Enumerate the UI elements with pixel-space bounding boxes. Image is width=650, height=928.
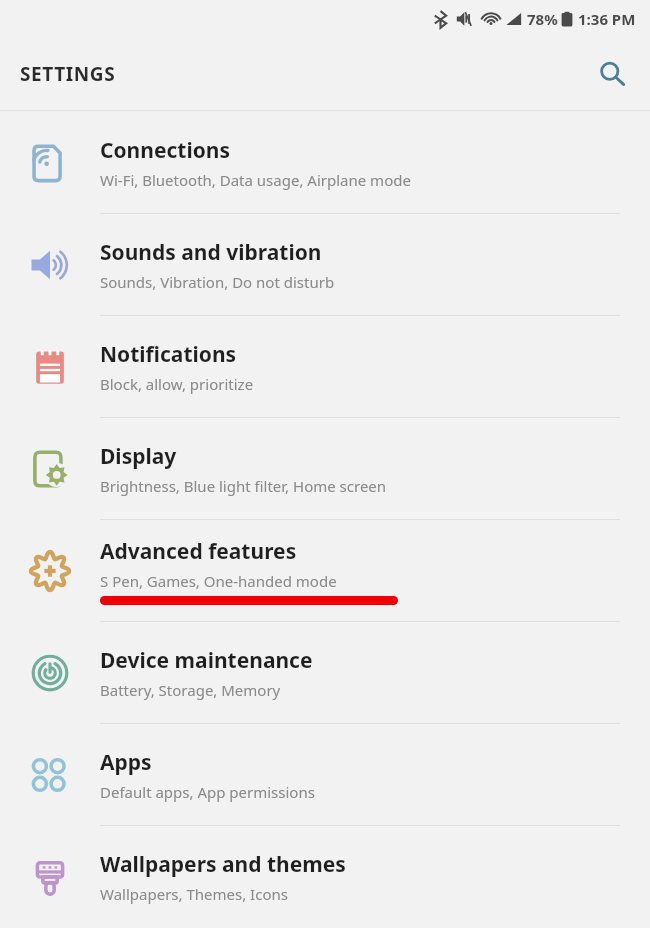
button[interactable]: Device maintenance (0, 622, 650, 723)
staticText: Display (100, 442, 177, 471)
staticText: Wallpapers, Themes, Icons (100, 884, 288, 904)
button[interactable]: Display (0, 418, 650, 519)
staticText: SETTINGS (20, 61, 116, 87)
staticText: Advanced features (100, 537, 297, 566)
staticText: 78% (527, 9, 558, 29)
staticText: Battery, Storage, Memory (100, 680, 281, 700)
staticText: Sounds, Vibration, Do not disturb (100, 272, 335, 292)
button[interactable]: Connections (0, 112, 650, 213)
button[interactable]: Notifications (0, 316, 650, 417)
button[interactable]: Wallpapers and themes (0, 826, 650, 927)
button[interactable]: Advanced features (0, 520, 650, 621)
staticText: Apps (100, 748, 152, 777)
button[interactable]: Apps (0, 724, 650, 825)
staticText: Brightness, Blue light filter, Home scre… (100, 476, 387, 496)
staticText: Connections (100, 136, 230, 165)
staticText: 1:36 PM (578, 9, 636, 29)
staticText: Sounds and vibration (100, 238, 322, 267)
staticText: S Pen, Games, One-handed mode (100, 571, 337, 591)
staticText: Wallpapers and themes (100, 850, 346, 879)
staticText: Block, allow, prioritize (100, 374, 254, 394)
staticText: Notifications (100, 340, 237, 369)
button[interactable]: Search (588, 50, 636, 98)
staticText: Device maintenance (100, 646, 313, 675)
staticText: Default apps, App permissions (100, 782, 315, 802)
button[interactable]: Sounds and vibration (0, 214, 650, 315)
staticText: Wi-Fi, Bluetooth, Data usage, Airplane m… (100, 170, 411, 190)
